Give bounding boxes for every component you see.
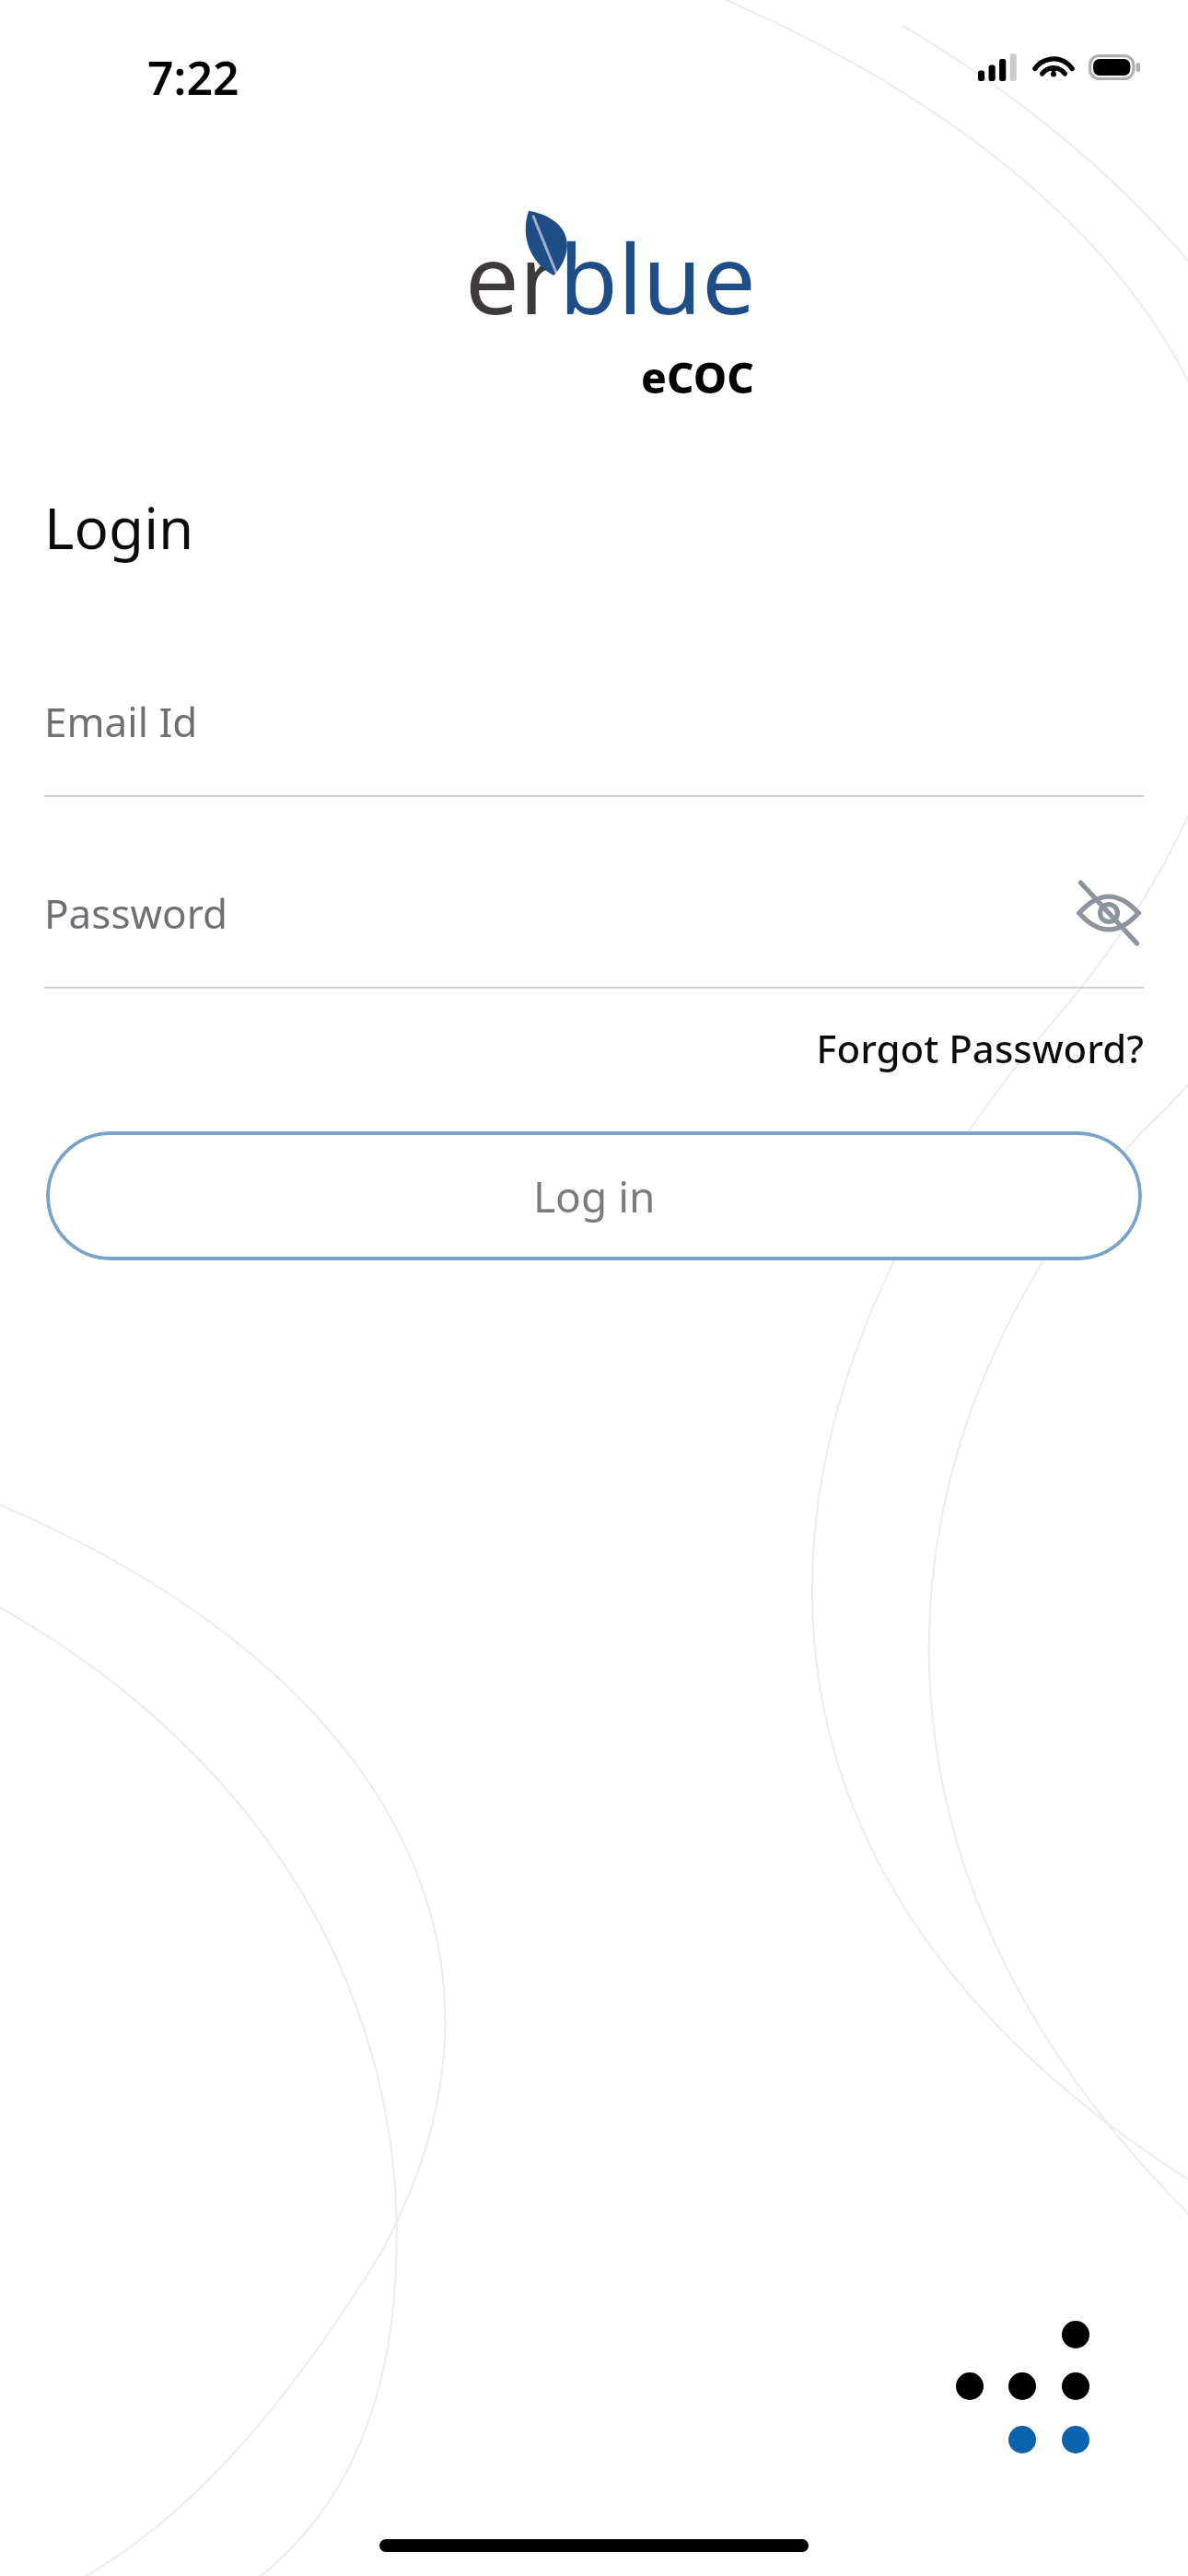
button[interactable]: Show password: [1074, 878, 1144, 948]
staticText: Forgot Password?: [816, 1022, 1144, 1074]
staticText: blue: [559, 212, 756, 343]
staticText: Login: [44, 488, 194, 566]
staticText: er: [465, 212, 559, 343]
button[interactable]: Email Id: [44, 681, 1144, 797]
staticText: eCOC: [641, 348, 754, 406]
staticText: Password: [44, 885, 228, 941]
staticText: 7:22: [147, 46, 239, 109]
staticText: Log in: [533, 1167, 656, 1225]
button[interactable]: Password: [44, 872, 1144, 989]
button[interactable]: Forgot Password?: [44, 1022, 1144, 1074]
staticText: Email Id: [44, 694, 198, 749]
button[interactable]: Log in: [46, 1131, 1142, 1260]
